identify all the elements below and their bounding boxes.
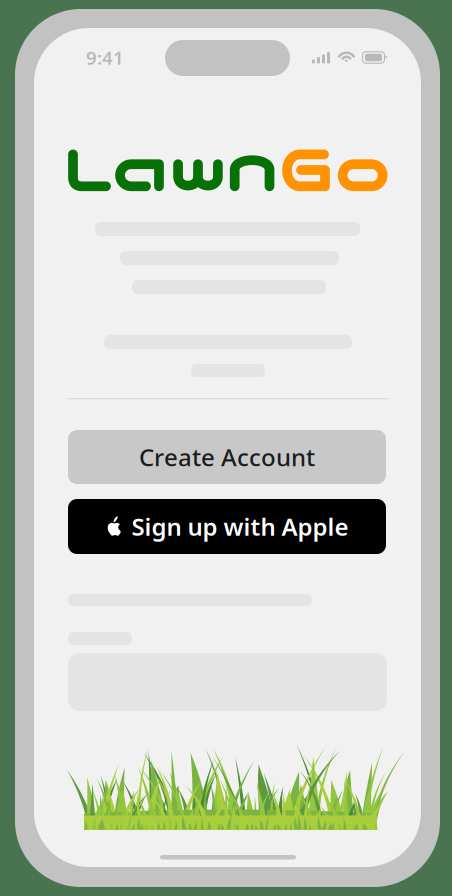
- button[interactable]: Sign up with Apple: [0, 0, 452, 896]
- staticText: 9:41: [86, 45, 124, 67]
- staticText: Create Account: [139, 441, 315, 473]
- staticText: Sign up with Apple: [131, 511, 348, 542]
- button[interactable]: Create Account: [0, 0, 452, 896]
